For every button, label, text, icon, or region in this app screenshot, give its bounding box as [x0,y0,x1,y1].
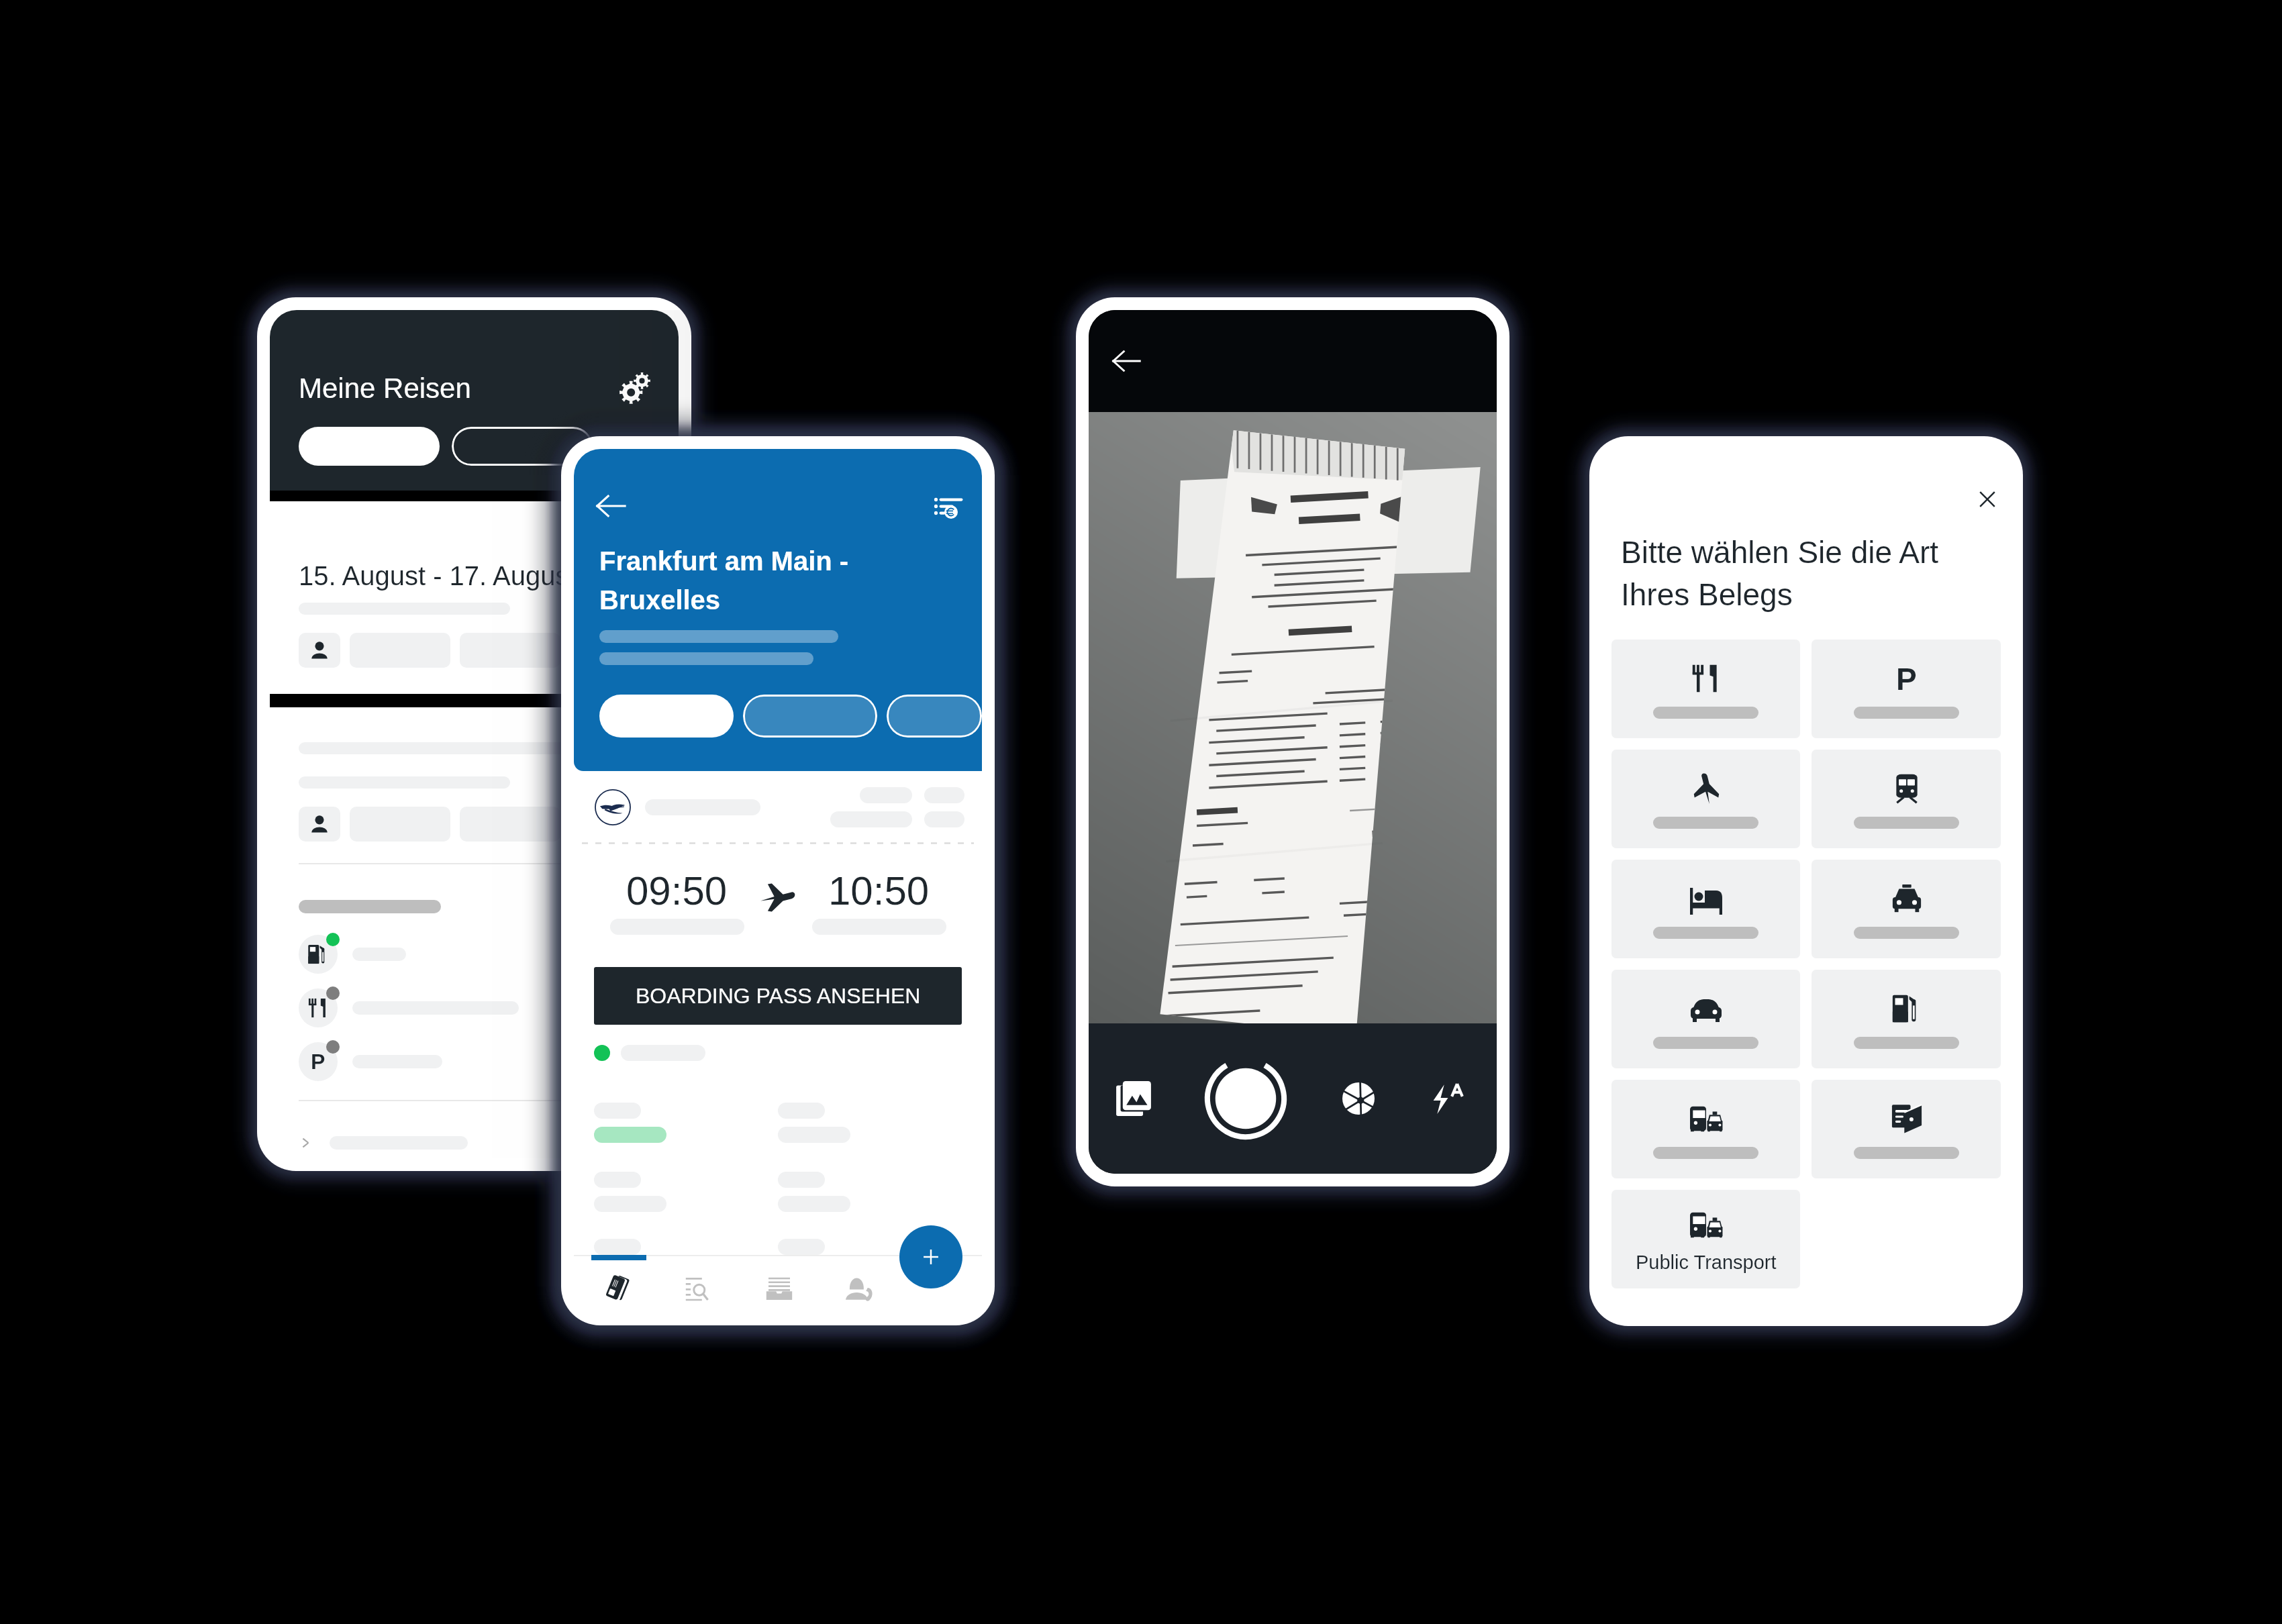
staticText: 15. August - 17. August 20 [299,561,614,591]
button[interactable]: Gallery [1113,1078,1154,1119]
staticText: Frankfurt am Main - Bruxelles [599,546,849,615]
button[interactable]: Public Transport [1611,1190,1800,1288]
button[interactable]: Expenses [928,488,964,524]
button[interactable]: Bus and taxi [1611,1080,1800,1178]
button[interactable]: Settings [617,370,652,405]
button[interactable]: BOARDING PASS ANSEHEN [594,967,962,1025]
staticText: Meine Reisen [299,372,471,404]
button[interactable]: Taxi [1812,860,2001,958]
button[interactable]: Train [1812,750,2001,848]
button[interactable]: Back [593,488,629,524]
staticText: 09:50 [626,868,728,913]
button[interactable]: Hotel tab [743,695,877,738]
staticText: BOARDING PASS ANSEHEN [636,984,921,1008]
button[interactable]: Trips [591,1263,645,1313]
staticText: P [1896,662,1917,696]
button[interactable]: Rental car [1611,970,1800,1068]
button[interactable]: Car rental tab [887,695,982,738]
button[interactable]: Parking [1812,640,2001,738]
button[interactable]: Back [1109,344,1144,378]
button[interactable]: Past trips filter [452,427,593,466]
button[interactable]: Search [672,1263,726,1313]
button[interactable]: Archive [752,1263,806,1313]
staticText: 10:50 [828,868,930,913]
button[interactable]: Flash auto [1428,1078,1470,1119]
button[interactable]: Other expense [1812,1080,2001,1178]
button[interactable]: Flight tab [599,695,734,738]
staticText: Public Transport [1636,1252,1777,1273]
button[interactable]: Fuel [1812,970,2001,1068]
button[interactable]: Hotel [1611,860,1800,958]
staticText: P [311,1050,326,1074]
button[interactable]: Add [899,1225,962,1288]
button[interactable]: Restaurant [1611,640,1800,738]
button[interactable]: Contact [833,1263,887,1313]
staticText: Bitte wählen Sie die Art Ihres Belegs [1621,535,1939,612]
button[interactable]: Aperture [1338,1078,1379,1119]
button[interactable]: Upcoming trips filter [299,427,440,466]
button[interactable]: Flight [1611,750,1800,848]
button[interactable]: Close [1969,480,2006,518]
button[interactable]: Take photo [1203,1056,1288,1141]
